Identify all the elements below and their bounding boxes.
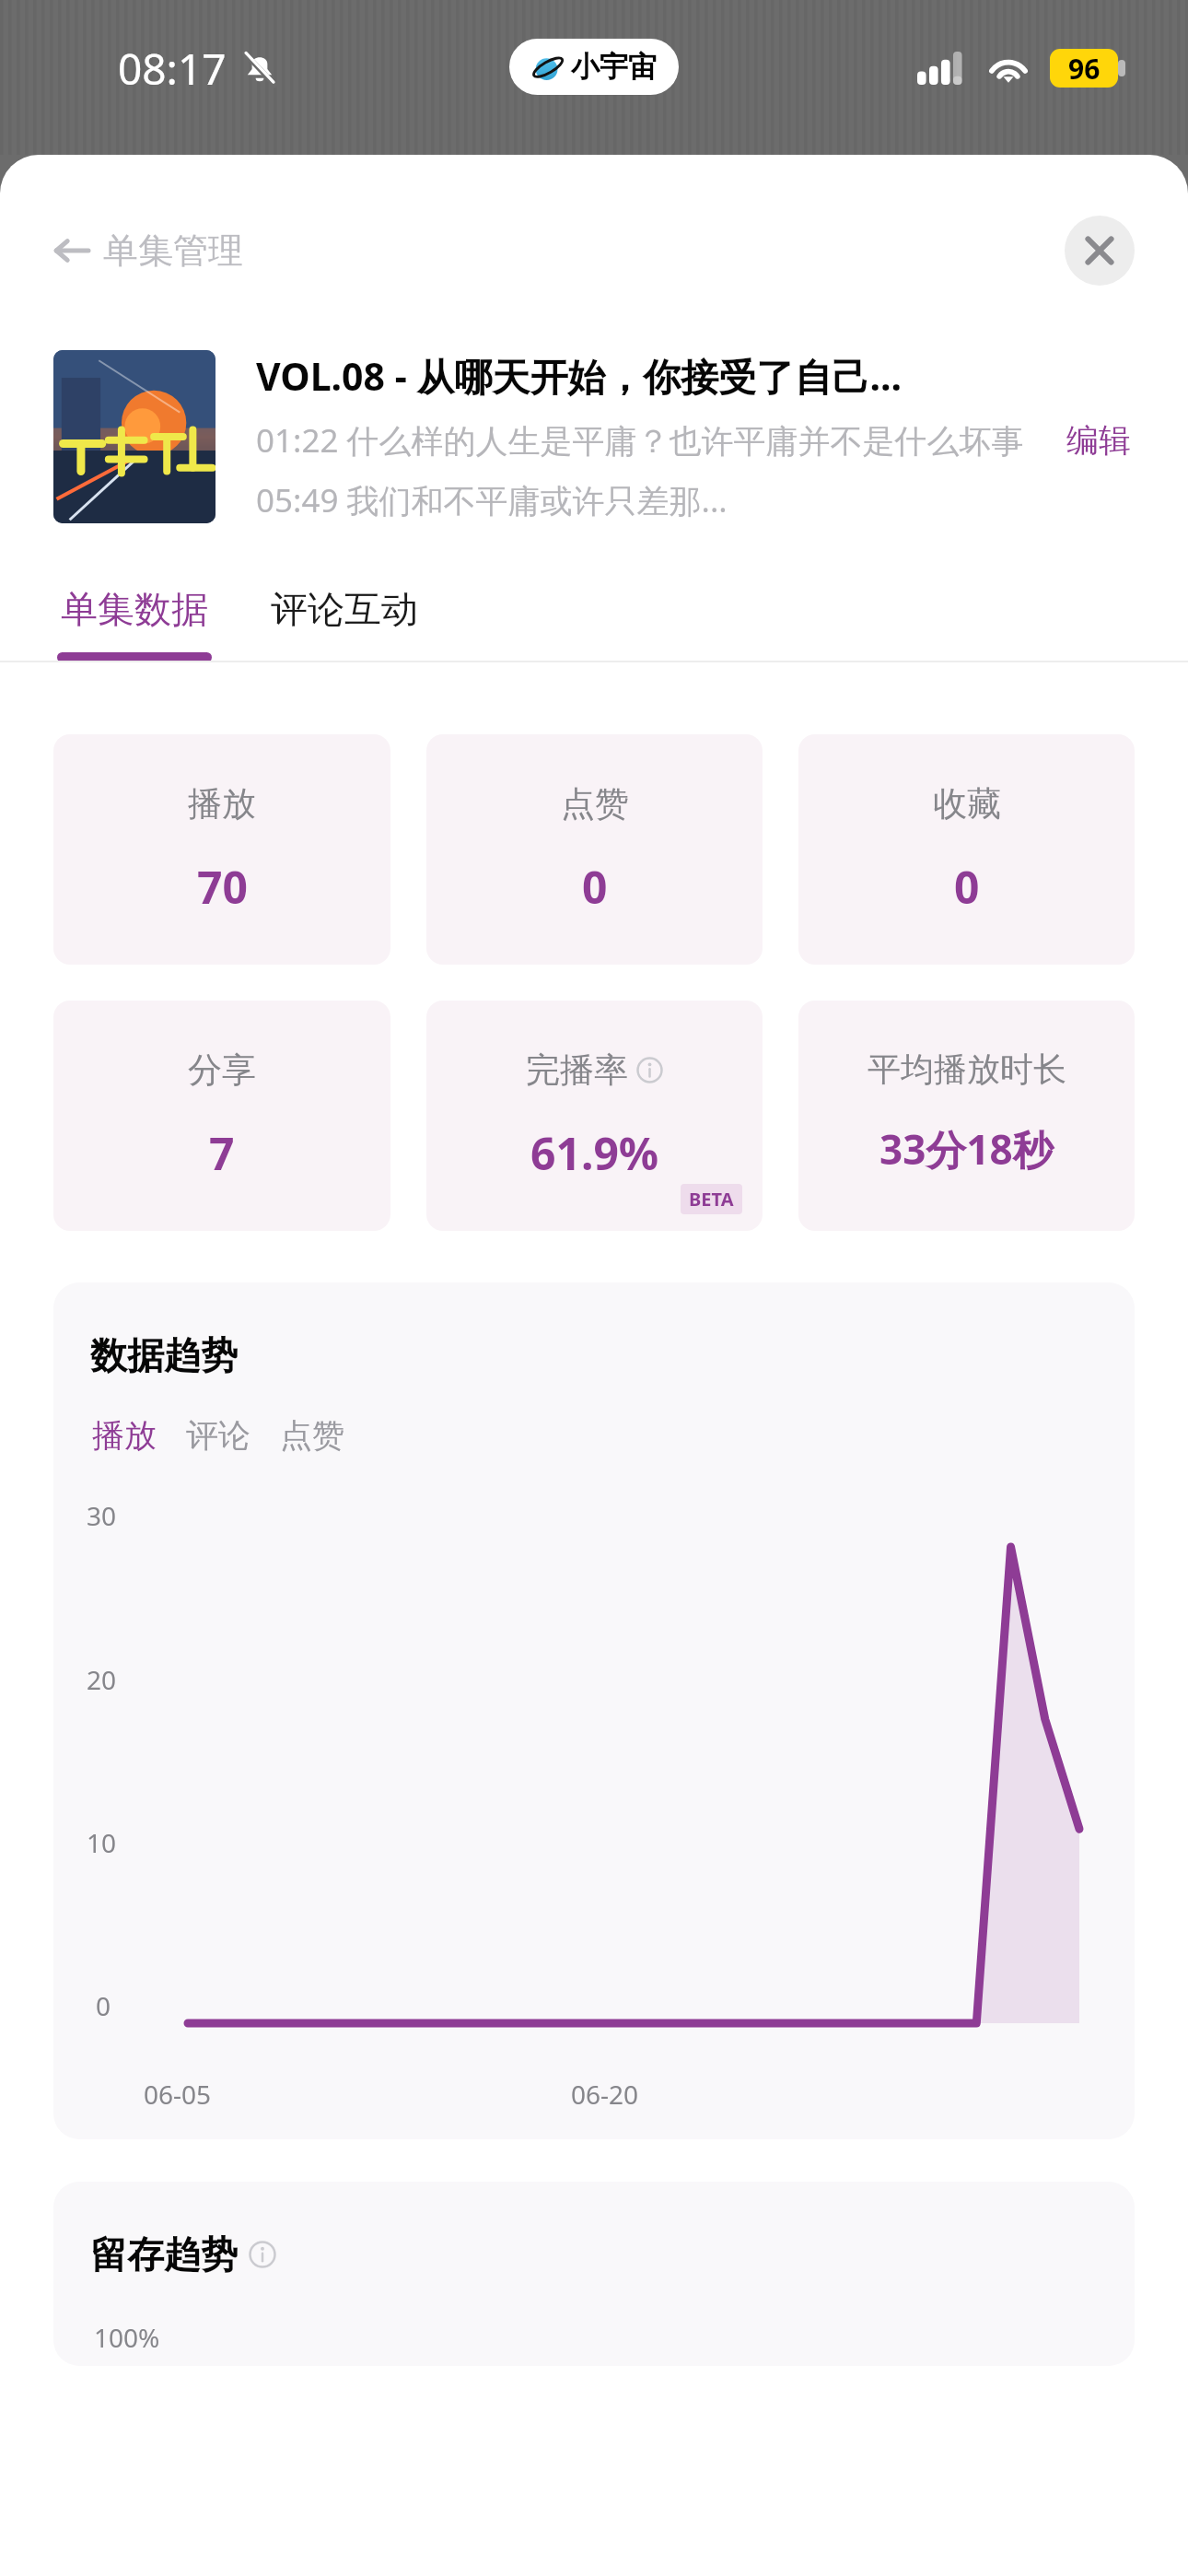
staticText: 小宇宙 bbox=[571, 49, 657, 85]
staticText: 96 bbox=[1068, 50, 1101, 88]
staticText: 数据趋势 bbox=[90, 1332, 238, 1378]
button[interactable]: 完播率 bbox=[426, 1001, 763, 1231]
button[interactable]: 留存趋势 bbox=[53, 2182, 1135, 2366]
staticText: 20 bbox=[87, 1662, 117, 1697]
other: Info bbox=[249, 2241, 276, 2268]
button[interactable]: 小宇宙 bbox=[509, 39, 679, 95]
staticText: 06-20 bbox=[571, 2077, 639, 2112]
staticText: 70 bbox=[197, 857, 248, 917]
staticText: 100% bbox=[94, 2320, 160, 2355]
button[interactable]: 分享 bbox=[53, 1001, 390, 1231]
staticText: 平均播放时长 bbox=[868, 1048, 1066, 1090]
button[interactable]: 评论 bbox=[184, 1415, 252, 1456]
button[interactable]: 点赞 bbox=[278, 1415, 346, 1456]
staticText: 点赞 bbox=[280, 1415, 344, 1456]
staticText: 7 bbox=[209, 1123, 235, 1183]
other: Back bbox=[53, 232, 90, 269]
staticText: 08:17 bbox=[118, 40, 227, 98]
staticText: 评论互动 bbox=[271, 586, 418, 632]
staticText: 单集管理 bbox=[103, 228, 243, 273]
staticText: 10 bbox=[87, 1825, 117, 1860]
staticText: 33分18秒 bbox=[879, 1121, 1054, 1177]
staticText: BETA bbox=[689, 1187, 734, 1212]
button[interactable]: 编辑 bbox=[1063, 418, 1135, 463]
staticText: 01:22 什么样的人生是平庸？也许平庸并不是什么坏事 05:49 我们和不平庸… bbox=[256, 418, 1042, 521]
staticText: 播放 bbox=[188, 782, 256, 825]
staticText: 播放 bbox=[92, 1415, 157, 1456]
button[interactable]: 评论互动 bbox=[267, 586, 422, 632]
staticText: 点赞 bbox=[561, 782, 629, 825]
staticText: 评论 bbox=[186, 1415, 250, 1456]
staticText: 30 bbox=[87, 1498, 117, 1533]
button[interactable]: 播放 bbox=[90, 1415, 158, 1456]
button[interactable]: 点赞 bbox=[426, 734, 763, 965]
button[interactable]: 播放 bbox=[53, 734, 390, 965]
staticText: 单集数据 bbox=[61, 586, 208, 632]
staticText: 完播率 bbox=[526, 1048, 628, 1092]
other: Info bbox=[636, 1057, 663, 1083]
staticText: VOL.08 - 从哪天开始，你接受了自己... bbox=[256, 350, 903, 402]
button[interactable]: 单集数据 bbox=[53, 586, 215, 662]
staticText: 分享 bbox=[188, 1048, 256, 1092]
staticText: 0 bbox=[582, 857, 608, 917]
button[interactable]: Close bbox=[1065, 216, 1135, 286]
staticText: 0 bbox=[954, 857, 980, 917]
button[interactable]: Back bbox=[0, 217, 262, 284]
staticText: 06-05 bbox=[144, 2077, 212, 2112]
button[interactable]: 平均播放时长 bbox=[798, 1001, 1135, 1231]
staticText: 61.9% bbox=[530, 1123, 659, 1183]
staticText: 收藏 bbox=[933, 782, 1001, 825]
staticText: 0 bbox=[96, 1988, 111, 2023]
staticText: 编辑 bbox=[1066, 420, 1131, 461]
button[interactable]: 收藏 bbox=[798, 734, 1135, 965]
staticText: 留存趋势 bbox=[90, 2231, 238, 2277]
